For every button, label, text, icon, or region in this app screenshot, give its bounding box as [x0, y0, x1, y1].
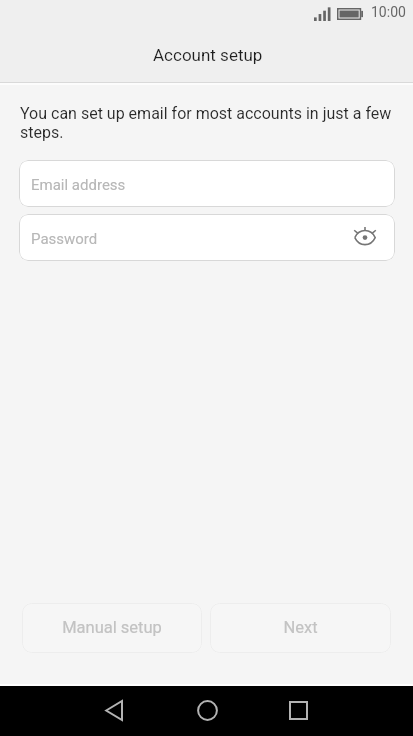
- button[interactable]: Next: [210, 603, 391, 653]
- button[interactable]: Home: [187, 690, 227, 730]
- staticText: Password: [31, 230, 98, 248]
- staticText: Next: [283, 618, 318, 637]
- staticText: Manual setup: [62, 618, 162, 637]
- staticText: You can set up email for most accounts i…: [20, 104, 396, 142]
- button[interactable]: Manual setup: [22, 603, 202, 653]
- button[interactable]: Recents: [278, 690, 318, 730]
- button[interactable]: Back: [94, 690, 134, 730]
- staticText: Account setup: [153, 45, 263, 65]
- button[interactable]: Password: [19, 214, 395, 261]
- button[interactable]: Show password: [349, 221, 381, 253]
- staticText: Email address: [31, 176, 126, 194]
- staticText: 10:00: [371, 4, 406, 20]
- button[interactable]: Email address: [19, 160, 395, 207]
